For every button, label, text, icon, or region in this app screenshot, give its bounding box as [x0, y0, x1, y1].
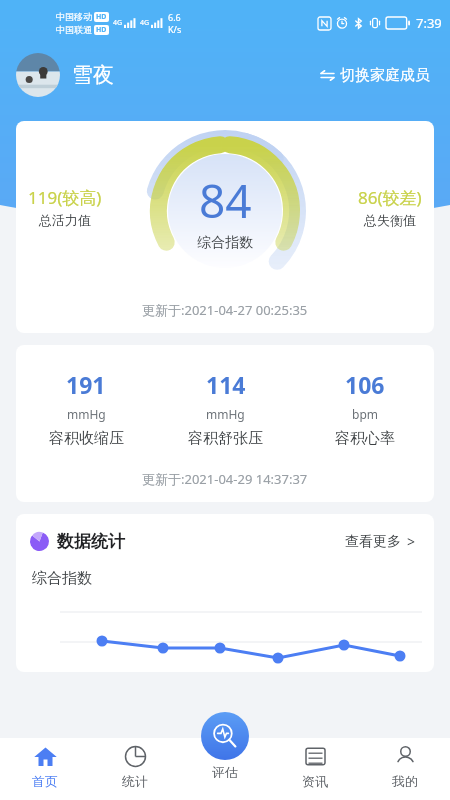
staticText: 4G [140, 18, 150, 28]
staticText: bpm [352, 406, 378, 422]
staticText: mmHg [206, 406, 245, 422]
staticText: 7:39 [416, 14, 442, 32]
staticText: 综合指数 [32, 569, 92, 588]
button[interactable]: 切换家庭成员 [315, 62, 434, 89]
staticText: 切换家庭成员 [340, 66, 430, 85]
staticText: 统计 [122, 773, 148, 789]
staticText: 容积心率 [335, 429, 395, 448]
staticText: K/s [168, 23, 182, 35]
staticText: HD [96, 25, 107, 35]
button[interactable]: 首页 [0, 738, 90, 800]
button[interactable]: 评估 [180, 738, 270, 800]
staticText: 我的 [392, 773, 418, 789]
staticText: 中国移动 [56, 11, 92, 22]
staticText: 中国联通 [56, 24, 92, 35]
staticText: 容积收缩压 [49, 429, 124, 448]
staticText: 191 [66, 369, 106, 400]
staticText: 86(较差) [358, 186, 422, 209]
button[interactable] [16, 53, 60, 97]
staticText: 4G [113, 18, 123, 28]
staticText: 查看更多 [345, 533, 401, 551]
staticText: 更新于:2021-04-29 14:37:37 [142, 470, 308, 488]
staticText: 总活力值 [39, 212, 91, 228]
staticText: 6.6 [168, 11, 181, 23]
staticText: 114 [206, 369, 246, 400]
button[interactable]: 统计 [90, 738, 180, 800]
staticText: 106 [345, 369, 385, 400]
staticText: mmHg [67, 406, 106, 422]
staticText: 评估 [212, 764, 238, 778]
staticText: 数据统计 [57, 531, 125, 552]
staticText: 84 [199, 169, 252, 232]
other: 评估 [201, 712, 249, 760]
staticText: 综合指数 [197, 234, 253, 252]
staticText: 总失衡值 [364, 212, 416, 228]
button[interactable]: 查看更多 [341, 528, 420, 555]
button[interactable]: 资讯 [270, 738, 360, 800]
button[interactable]: 我的 [360, 738, 450, 800]
button[interactable]: 191 [16, 345, 434, 502]
staticText: > [407, 532, 416, 551]
staticText: 首页 [32, 773, 58, 789]
staticText: 119(较高) [28, 186, 102, 209]
staticText: 更新于:2021-04-27 00:25:35 [142, 301, 308, 319]
staticText: HD [96, 12, 107, 22]
staticText: 资讯 [302, 773, 328, 789]
staticText: 容积舒张压 [188, 429, 263, 448]
staticText: 雪夜 [72, 62, 114, 88]
button[interactable]: 84 [16, 121, 434, 333]
